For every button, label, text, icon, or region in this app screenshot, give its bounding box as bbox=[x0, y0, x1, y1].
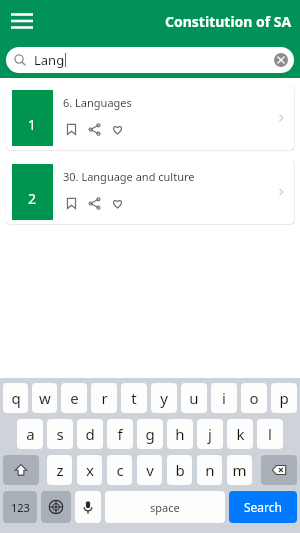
button[interactable]: l bbox=[257, 419, 283, 449]
staticText: u bbox=[189, 388, 199, 408]
button[interactable]: e bbox=[61, 383, 87, 413]
staticText: Constitution of SA bbox=[165, 12, 292, 31]
button[interactable]: m bbox=[227, 455, 252, 485]
button[interactable]: Lang bbox=[6, 47, 294, 73]
button[interactable]: p bbox=[271, 383, 297, 413]
staticText: j bbox=[208, 424, 212, 444]
button[interactable]: j bbox=[197, 419, 223, 449]
staticText: 1 bbox=[28, 115, 37, 134]
staticText: 123 bbox=[11, 500, 30, 515]
staticText: r bbox=[101, 388, 108, 408]
button[interactable]: 2 bbox=[6, 160, 294, 224]
staticText: 6. Languages bbox=[63, 95, 132, 110]
staticText: f bbox=[117, 424, 123, 444]
staticText: 30. Language and culture bbox=[63, 169, 195, 184]
button[interactable]: x bbox=[77, 455, 102, 485]
button[interactable]: k bbox=[227, 419, 253, 449]
button[interactable]: f bbox=[107, 419, 133, 449]
button[interactable]: w bbox=[32, 383, 57, 413]
button[interactable]: Favorite bbox=[109, 195, 125, 211]
button[interactable]: Search bbox=[229, 491, 297, 523]
staticText: q bbox=[11, 388, 21, 408]
button[interactable]: space bbox=[105, 491, 225, 523]
staticText: n bbox=[205, 460, 215, 480]
staticText: space bbox=[150, 500, 180, 515]
staticText: c bbox=[116, 460, 124, 480]
staticText: b bbox=[175, 460, 185, 480]
button[interactable]: Share bbox=[86, 195, 102, 211]
button[interactable]: 123 bbox=[3, 491, 37, 523]
button[interactable]: Favorite bbox=[109, 121, 125, 137]
staticText: g bbox=[145, 424, 155, 444]
staticText: y bbox=[160, 388, 168, 408]
button[interactable]: Backspace bbox=[261, 455, 297, 485]
button[interactable]: Open navigation menu bbox=[6, 5, 38, 37]
button[interactable]: Bookmark bbox=[63, 195, 79, 211]
button[interactable]: i bbox=[211, 383, 237, 413]
staticText: p bbox=[279, 388, 289, 408]
button[interactable]: Voice input bbox=[75, 491, 101, 523]
staticText: k bbox=[236, 424, 245, 444]
staticText: x bbox=[86, 460, 94, 480]
button[interactable]: d bbox=[77, 419, 103, 449]
staticText: Search bbox=[244, 499, 282, 515]
button[interactable]: a bbox=[17, 419, 43, 449]
button[interactable]: u bbox=[181, 383, 207, 413]
button[interactable]: Share bbox=[86, 121, 102, 137]
staticText: a bbox=[26, 424, 35, 444]
staticText: m bbox=[232, 460, 247, 480]
staticText: Lang bbox=[34, 51, 65, 69]
button[interactable]: Change keyboard bbox=[41, 491, 71, 523]
staticText: s bbox=[56, 424, 64, 444]
staticText: 2 bbox=[28, 189, 37, 208]
staticText: l bbox=[268, 424, 272, 444]
button[interactable]: v bbox=[137, 455, 162, 485]
button[interactable]: t bbox=[121, 383, 147, 413]
button[interactable]: c bbox=[107, 455, 132, 485]
staticText: t bbox=[131, 388, 137, 408]
button[interactable]: Bookmark bbox=[63, 121, 79, 137]
button[interactable]: q bbox=[3, 383, 28, 413]
button[interactable]: s bbox=[47, 419, 73, 449]
button[interactable]: 1 bbox=[6, 86, 294, 150]
button[interactable]: g bbox=[137, 419, 163, 449]
button[interactable]: z bbox=[47, 455, 72, 485]
staticText: z bbox=[56, 460, 64, 480]
staticText: h bbox=[175, 424, 185, 444]
button[interactable]: r bbox=[91, 383, 117, 413]
staticText: o bbox=[249, 388, 259, 408]
button[interactable]: Shift bbox=[3, 455, 39, 485]
button[interactable]: n bbox=[197, 455, 222, 485]
button[interactable]: o bbox=[241, 383, 267, 413]
staticText: w bbox=[39, 388, 51, 408]
button[interactable]: h bbox=[167, 419, 193, 449]
button[interactable]: y bbox=[151, 383, 177, 413]
button[interactable]: Clear search text bbox=[274, 53, 288, 67]
button[interactable]: b bbox=[167, 455, 192, 485]
staticText: v bbox=[146, 460, 154, 480]
staticText: e bbox=[70, 388, 79, 408]
staticText: i bbox=[222, 388, 226, 408]
staticText: d bbox=[85, 424, 95, 444]
